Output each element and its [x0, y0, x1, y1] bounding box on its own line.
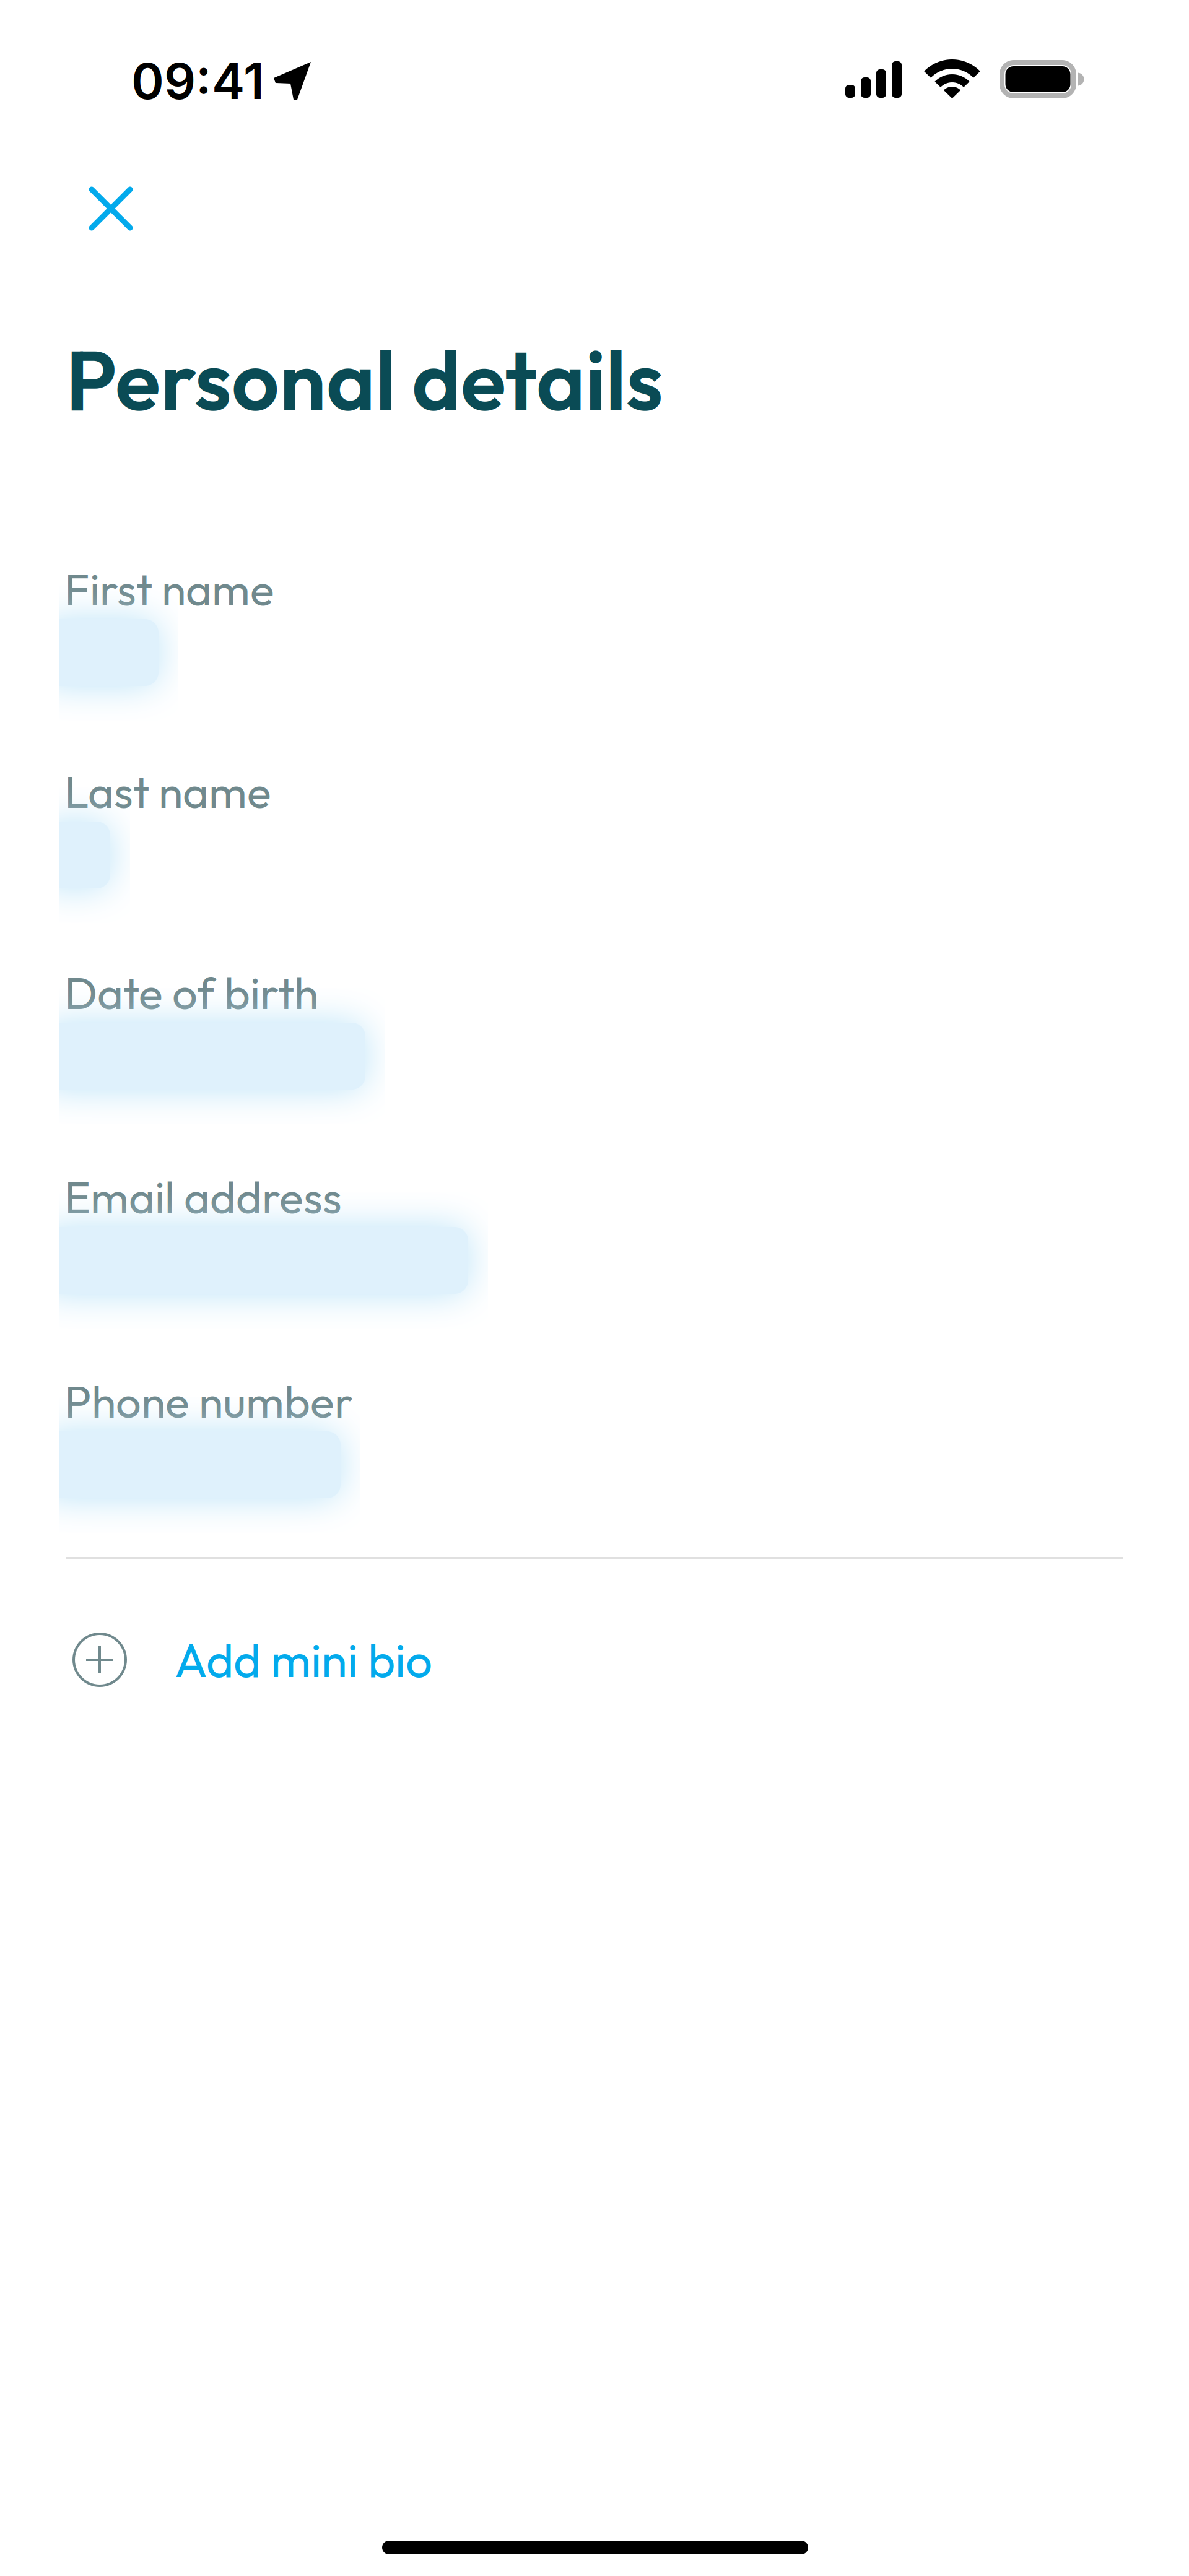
- staticText: Date of birth: [64, 965, 318, 1021]
- staticText: Personal details: [66, 327, 663, 432]
- staticText: Last name: [64, 763, 271, 819]
- staticText: Add mini bio: [175, 1630, 432, 1689]
- button[interactable]: Add mini bio: [69, 1606, 769, 1714]
- staticText: First name: [64, 561, 274, 617]
- staticText: Phone number: [64, 1373, 353, 1429]
- staticText: 09:41: [131, 51, 264, 111]
- button[interactable]: Close: [79, 176, 143, 241]
- staticText: Email address: [64, 1169, 342, 1225]
